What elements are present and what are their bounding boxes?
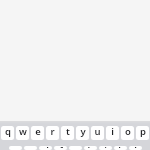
button[interactable]: j <box>99 146 112 150</box>
staticText: d <box>43 146 49 148</box>
button[interactable]: k <box>114 146 127 150</box>
button[interactable]: r <box>46 126 59 140</box>
button[interactable]: u <box>91 126 104 140</box>
staticText: q <box>5 126 11 138</box>
staticText: j <box>104 146 107 148</box>
button[interactable]: d <box>39 146 52 150</box>
button[interactable]: t <box>61 126 74 140</box>
staticText: f <box>59 146 63 148</box>
button[interactable]: s <box>24 146 37 150</box>
button[interactable]: q <box>1 126 14 140</box>
button[interactable]: i <box>106 126 119 140</box>
staticText: p <box>140 126 146 138</box>
button[interactable]: a <box>9 146 22 150</box>
staticText: k <box>118 146 124 148</box>
button[interactable]: e <box>31 126 44 140</box>
staticText: u <box>94 126 101 138</box>
staticText: r <box>50 126 55 138</box>
button[interactable]: g <box>69 146 82 150</box>
staticText: e <box>35 126 41 138</box>
button[interactable]: l <box>129 146 142 150</box>
button[interactable]: p <box>136 126 149 140</box>
staticText: w <box>19 126 27 138</box>
staticText: i <box>111 126 114 138</box>
button[interactable]: h <box>84 146 97 150</box>
staticText: t <box>66 126 70 138</box>
button[interactable]: w <box>16 126 29 140</box>
button[interactable]: y <box>76 126 89 140</box>
staticText: y <box>80 126 86 138</box>
staticText: o <box>125 126 131 138</box>
button[interactable]: o <box>121 126 134 140</box>
staticText: h <box>87 146 94 148</box>
staticText: l <box>134 146 137 148</box>
button[interactable]: f <box>54 146 67 150</box>
